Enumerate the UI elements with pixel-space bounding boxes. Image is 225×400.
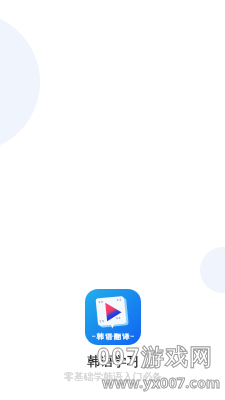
staticText: 韩语翻译 [96, 332, 130, 341]
staticText: www.yx007.com [102, 372, 221, 392]
staticText: 韩语学习 [87, 353, 139, 369]
staticText: 007游戏网 [97, 341, 214, 372]
staticText: 007游戏网 [97, 341, 214, 372]
staticText: 零基础学韩语入门必备 [64, 371, 162, 383]
staticText: www.yx007.com [102, 372, 221, 392]
button[interactable]: 韩语学习 app icon [85, 289, 141, 345]
